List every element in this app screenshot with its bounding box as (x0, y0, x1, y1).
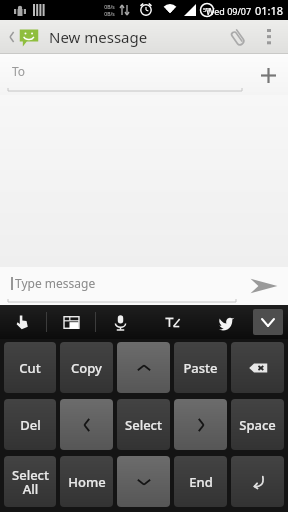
staticText: To (12, 63, 26, 79)
staticText: Paste (183, 359, 218, 377)
button[interactable]: Text formatting (144, 305, 200, 339)
button[interactable]: To (8, 54, 242, 95)
button[interactable]: Space (231, 399, 284, 450)
button[interactable]: More options (256, 20, 282, 54)
staticText: 0B/s 0B/s (104, 4, 115, 17)
button[interactable]: Move right (174, 399, 227, 450)
button[interactable]: Type message (8, 267, 240, 305)
staticText: Home (68, 473, 106, 491)
button[interactable]: Input language (47, 305, 95, 339)
button[interactable]: Handwriting (0, 305, 46, 339)
staticText: Select All (12, 466, 49, 498)
button[interactable]: Back (6, 26, 42, 48)
button[interactable]: Backspace (231, 342, 284, 393)
staticText: End (189, 473, 213, 491)
staticText: Del (20, 416, 41, 434)
button[interactable]: Cut (4, 342, 56, 393)
button[interactable]: Send (240, 267, 288, 305)
staticText: Select (125, 416, 162, 434)
button[interactable]: Select (117, 399, 170, 450)
button[interactable]: Home (60, 456, 113, 507)
staticText: 01:18 (255, 3, 284, 18)
button[interactable]: Hide keyboard (253, 309, 283, 335)
button[interactable]: End (174, 456, 227, 507)
staticText: Wed 09/07 (206, 5, 252, 17)
button[interactable]: Twitter (200, 305, 252, 339)
staticText: Cut (19, 359, 41, 377)
button[interactable]: Paste (174, 342, 227, 393)
button[interactable]: Move left (60, 399, 113, 450)
button[interactable]: Move down (117, 456, 170, 507)
button[interactable]: Move up (117, 342, 170, 393)
staticText: Space (239, 416, 276, 434)
button[interactable]: Attach (222, 20, 256, 54)
staticText: New message (49, 27, 148, 47)
button[interactable]: Add recipient (248, 55, 288, 95)
button[interactable]: Voice input (96, 305, 144, 339)
staticText: Copy (71, 359, 102, 377)
button[interactable]: Copy (60, 342, 113, 393)
button[interactable]: Del (4, 399, 56, 450)
staticText: 57 (203, 6, 210, 14)
button[interactable]: Enter (231, 456, 284, 507)
staticText: Type message (15, 275, 96, 291)
button[interactable]: Select All (4, 456, 56, 507)
